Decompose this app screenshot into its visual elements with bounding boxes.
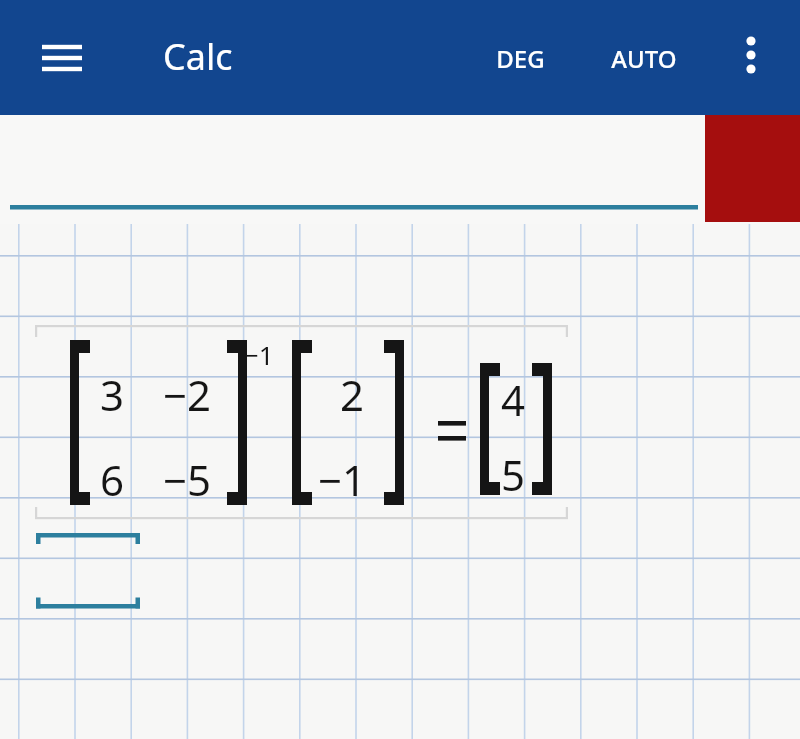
button[interactable]: DEG <box>478 30 562 86</box>
staticText: −2 <box>163 366 212 423</box>
staticText: 6 <box>100 451 125 508</box>
staticText: 3 <box>100 366 125 423</box>
button[interactable]: More options <box>722 26 780 84</box>
staticText: −1 <box>244 337 274 372</box>
staticText: 2 <box>340 366 365 423</box>
staticText: −1 <box>318 451 367 508</box>
staticText: 5 <box>501 446 526 503</box>
staticText: 4 <box>501 371 526 428</box>
staticText: −5 <box>163 451 212 508</box>
button[interactable]: AUTO <box>592 30 696 86</box>
button[interactable]: Open navigation menu <box>30 26 94 90</box>
staticText: AUTO <box>611 42 677 75</box>
staticText: Calc <box>163 32 233 81</box>
staticText: DEG <box>496 42 545 75</box>
